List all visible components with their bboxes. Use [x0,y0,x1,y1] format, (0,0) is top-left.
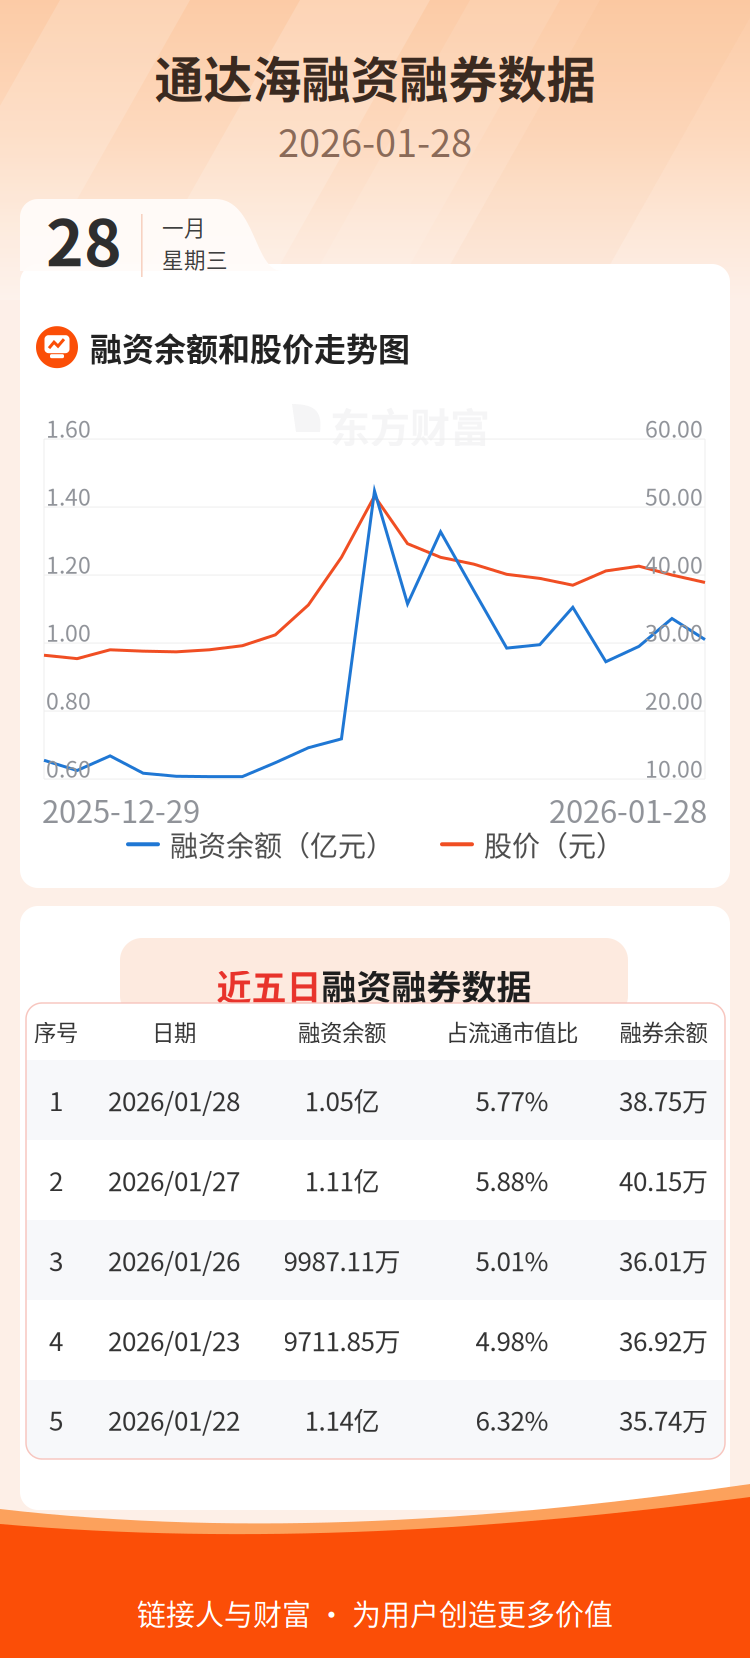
staticText: 2026/01/23 [108,1321,240,1359]
staticText: 2026/01/28 [108,1081,240,1119]
staticText: 5.77% [475,1081,548,1119]
staticText: 1.00 [46,615,91,648]
staticText: 1.40 [46,479,91,512]
staticText: 28 [46,192,122,285]
staticText: 35.74万 [619,1401,708,1438]
staticText: 50.00 [645,479,703,512]
staticText: 10.00 [645,751,703,784]
staticText: 融券余额 [619,1015,707,1048]
staticText: 日期 [152,1015,196,1048]
staticText: 60.00 [645,411,703,444]
staticText: 36.92万 [619,1321,708,1359]
staticText: 38.75万 [619,1081,708,1119]
staticText: 40.15万 [619,1161,708,1199]
staticText: 5.88% [475,1161,548,1199]
staticText: 股价（元） [484,824,624,864]
staticText: 4.98% [475,1321,548,1359]
staticText: 近五日 [216,960,321,1011]
staticText: 6.32% [475,1401,548,1438]
staticText: 9987.11万 [283,1241,400,1279]
staticText: 东方财富 [330,396,490,454]
staticText: 序号 [34,1015,78,1048]
staticText: 5.01% [475,1241,548,1279]
staticText: 链接人与财富 · 为用户创造更多价值 [137,1592,613,1634]
staticText: 1.14亿 [304,1401,379,1438]
staticText: 融资融券数据 [321,960,531,1011]
staticText: 30.00 [645,615,703,648]
staticText: 0.60 [46,751,91,784]
staticText: 2026/01/22 [108,1401,240,1438]
staticText: 1.05亿 [304,1081,379,1119]
staticText: 4 [49,1321,63,1359]
staticText: 0.80 [46,683,91,716]
staticText: 9711.85万 [283,1321,400,1359]
staticText: 36.01万 [619,1241,708,1279]
staticText: 2026-01-28 [549,787,707,832]
staticText: 1.60 [46,411,91,444]
staticText: 40.00 [645,547,703,580]
staticText: 1 [49,1081,63,1119]
staticText: 2026/01/26 [108,1241,240,1279]
staticText: 融资余额（亿元） [170,824,394,864]
staticText: 2026/01/27 [108,1161,240,1199]
staticText: 1.11亿 [304,1161,379,1199]
staticText: 融资余额和股价走势图 [90,324,410,370]
staticText: 星期三 [162,243,228,274]
staticText: 通达海融资融券数据 [154,41,595,112]
staticText: 1.20 [46,547,91,580]
staticText: 占流通市值比 [446,1015,578,1048]
staticText: 2 [49,1161,63,1199]
staticText: 一月 [162,211,206,242]
staticText: 20.00 [645,683,703,716]
staticText: 2025-12-29 [42,787,200,832]
staticText: 5 [49,1401,63,1438]
staticText: 2026-01-28 [278,113,472,168]
staticText: 融资余额 [298,1015,386,1048]
staticText: 3 [49,1241,63,1279]
